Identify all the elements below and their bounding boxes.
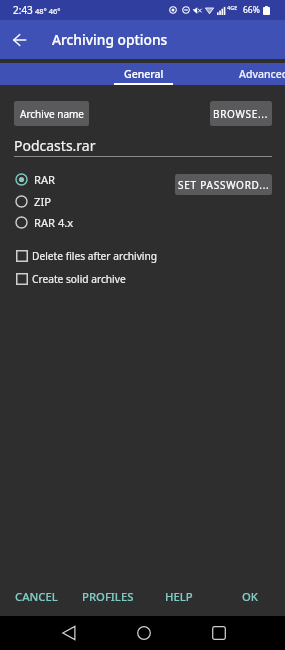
staticText: HELP: [165, 589, 193, 604]
button[interactable]: Advanced: [231, 63, 285, 85]
button[interactable]: PROFILES: [72, 577, 143, 616]
staticText: 2:43: [13, 3, 33, 17]
staticText: Archiving options: [52, 30, 168, 49]
staticText: SET PASSWORD...: [178, 178, 270, 192]
button[interactable]: OK: [214, 577, 285, 616]
staticText: CANCEL: [15, 589, 58, 604]
button[interactable]: Delete files after archiving: [0, 245, 285, 267]
staticText: 48° 46°: [35, 6, 61, 16]
staticText: PROFILES: [82, 589, 134, 604]
button[interactable]: Back: [7, 27, 32, 52]
button[interactable]: BROWSE...: [210, 101, 272, 126]
button[interactable]: SET PASSWORD...: [175, 174, 272, 195]
button[interactable]: ZIP: [0, 190, 285, 212]
staticText: 66%: [243, 4, 260, 16]
staticText: Archive name: [20, 107, 84, 121]
staticText: RAR: [34, 172, 56, 187]
staticText: General: [124, 67, 164, 81]
button[interactable]: RAR 4.x: [0, 211, 285, 233]
staticText: Advanced: [239, 67, 285, 81]
staticText: BROWSE...: [213, 107, 269, 121]
staticText: OK: [242, 589, 258, 604]
staticText: 4GE: [227, 4, 238, 11]
button[interactable]: Create solid archive: [0, 268, 285, 290]
button[interactable]: Recents: [196, 616, 242, 650]
staticText: Podcasts.rar: [14, 136, 96, 155]
button[interactable]: Archive name: [14, 101, 89, 126]
button[interactable]: HELP: [143, 577, 214, 616]
button[interactable]: RAR: [0, 168, 285, 190]
button[interactable]: Back: [46, 616, 92, 650]
staticText: Create solid archive: [32, 272, 126, 286]
staticText: ZIP: [34, 194, 51, 209]
button[interactable]: CANCEL: [0, 577, 72, 616]
button[interactable]: Home: [121, 616, 167, 650]
staticText: Delete files after archiving: [32, 249, 158, 263]
staticText: RAR 4.x: [34, 215, 74, 230]
button[interactable]: General: [114, 63, 173, 85]
